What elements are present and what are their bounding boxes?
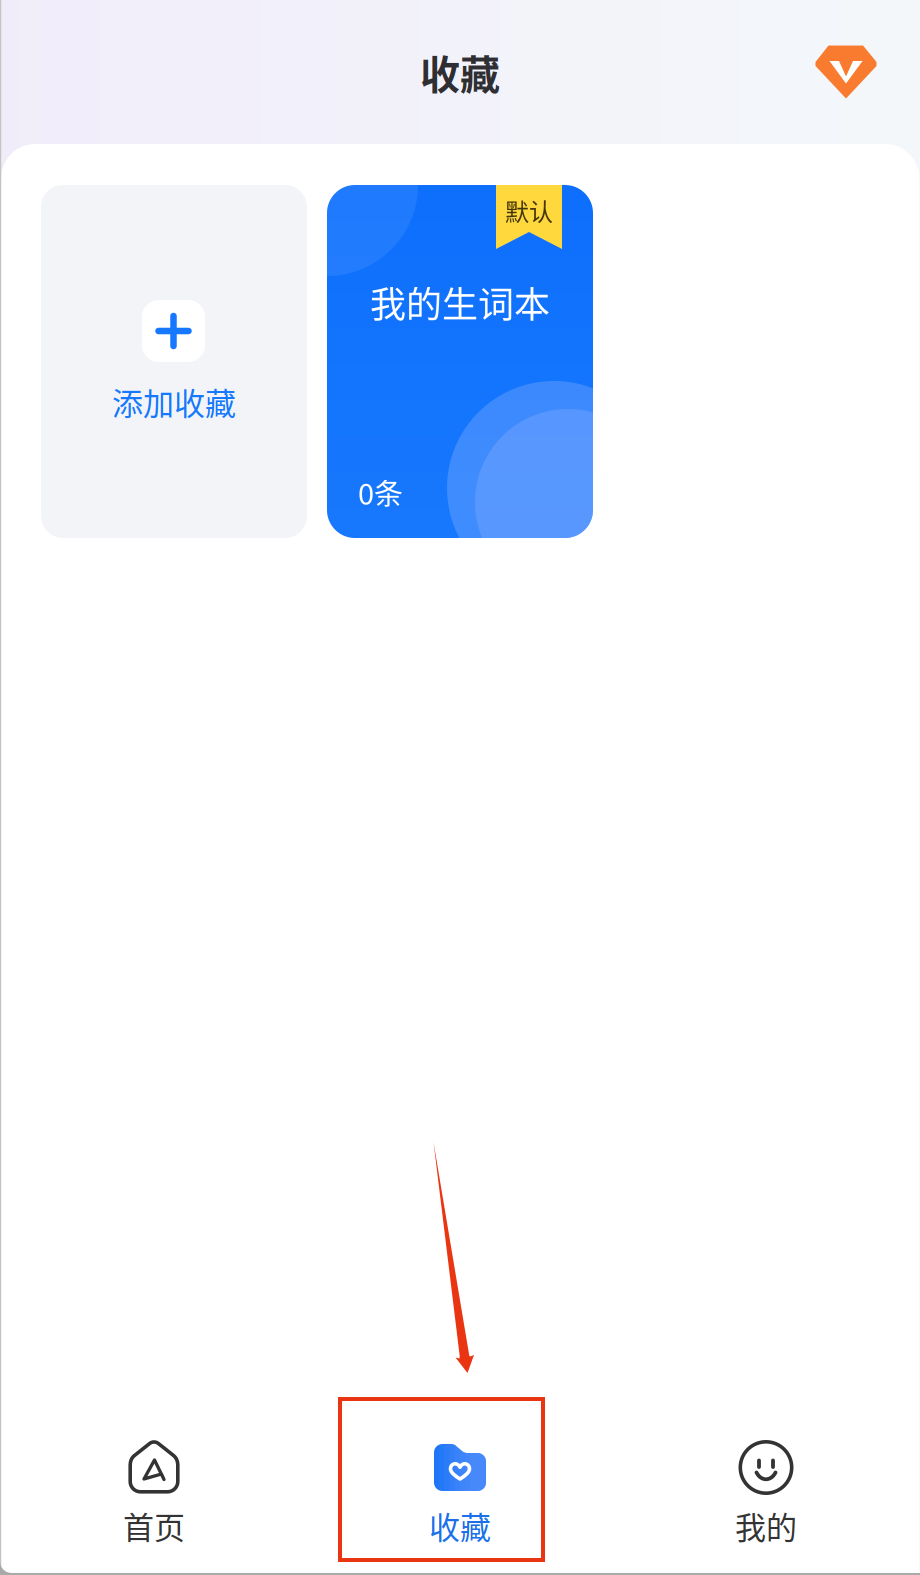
staticText: 收藏	[429, 1503, 491, 1548]
button[interactable]: VIP	[0, 0, 62, 54]
button[interactable]: 首页	[1, 1440, 307, 1575]
button[interactable]: 我的	[613, 1440, 919, 1575]
button[interactable]: 收藏	[307, 1440, 613, 1575]
staticText: 0条	[358, 471, 403, 513]
staticText: 默认	[505, 193, 553, 228]
staticText: 首页	[123, 1503, 185, 1548]
button[interactable]: 默认	[327, 185, 593, 538]
button[interactable]: 收藏	[0, 0, 920, 58]
staticText: 我的	[735, 1503, 797, 1548]
button[interactable]: 添加收藏	[41, 185, 307, 538]
staticText: 我的生词本	[370, 276, 550, 328]
staticText: 添加收藏	[112, 379, 236, 424]
staticText: 收藏	[420, 43, 500, 101]
